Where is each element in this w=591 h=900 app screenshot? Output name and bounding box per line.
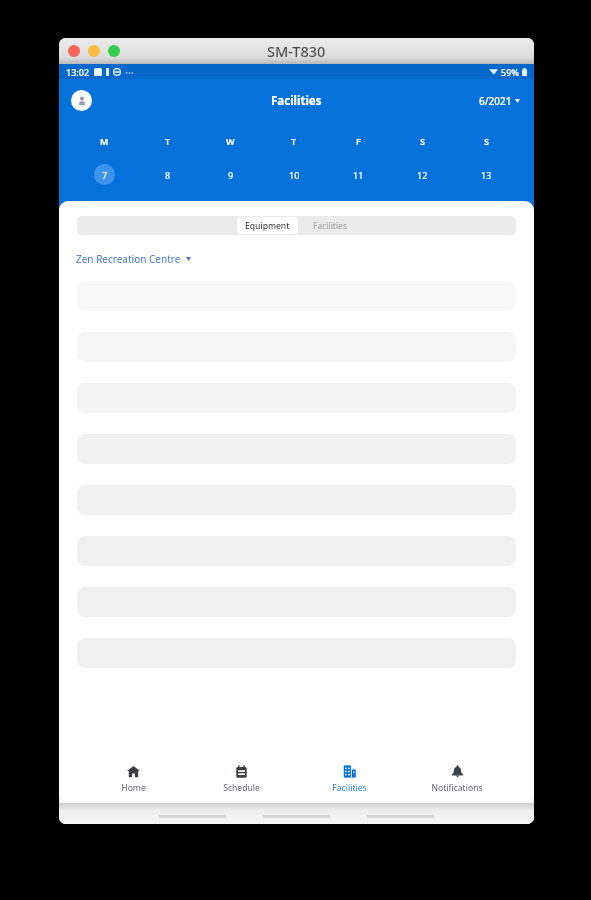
button[interactable]: Close <box>68 45 80 57</box>
staticText: M <box>100 135 109 147</box>
button[interactable]: 11 <box>348 164 369 185</box>
staticText: Facilities <box>271 93 322 109</box>
staticText: 13:02 <box>66 66 90 78</box>
button[interactable]: Maximize <box>108 45 120 57</box>
button[interactable]: 13 <box>476 164 497 185</box>
button[interactable]: Zen Recreation Centre <box>76 252 191 266</box>
staticText: 11 <box>353 169 364 181</box>
staticText: Equipment <box>245 220 290 232</box>
button[interactable]: Equipment <box>237 217 298 234</box>
button[interactable]: Facilities <box>295 755 403 803</box>
button[interactable]: Minimize <box>88 45 100 57</box>
button[interactable]: Profile <box>71 90 92 111</box>
staticText: 59% <box>501 66 519 78</box>
staticText: 13 <box>481 169 492 181</box>
staticText: Facilities <box>332 782 367 794</box>
staticText: T <box>291 135 297 147</box>
staticText: S <box>484 135 489 147</box>
button[interactable]: Notifications <box>403 755 511 803</box>
button[interactable]: Facilities <box>298 217 357 234</box>
staticText: Zen Recreation Centre <box>76 252 181 266</box>
staticText: T <box>165 135 171 147</box>
button[interactable]: 8 <box>157 164 178 185</box>
staticText: S <box>420 135 425 147</box>
button[interactable]: 9 <box>220 164 241 185</box>
staticText: Notifications <box>431 782 483 794</box>
staticText: W <box>226 135 235 147</box>
staticText: 12 <box>417 169 428 181</box>
staticText: 9 <box>228 169 234 181</box>
staticText: F <box>356 135 361 147</box>
staticText: Home <box>121 782 146 794</box>
button[interactable]: 7 <box>94 164 115 185</box>
button[interactable]: Schedule <box>187 755 295 803</box>
button[interactable]: 6/2021 <box>479 94 520 108</box>
button[interactable]: 10 <box>284 164 305 185</box>
button[interactable]: 12 <box>412 164 433 185</box>
staticText: 8 <box>165 169 171 181</box>
button[interactable]: Home <box>79 755 187 803</box>
staticText: 7 <box>102 169 108 181</box>
staticText: 6/2021 <box>479 94 512 108</box>
staticText: 10 <box>289 169 300 181</box>
staticText: Schedule <box>223 782 260 794</box>
staticText: SM-T830 <box>267 41 326 61</box>
staticText: Facilities <box>313 220 347 232</box>
